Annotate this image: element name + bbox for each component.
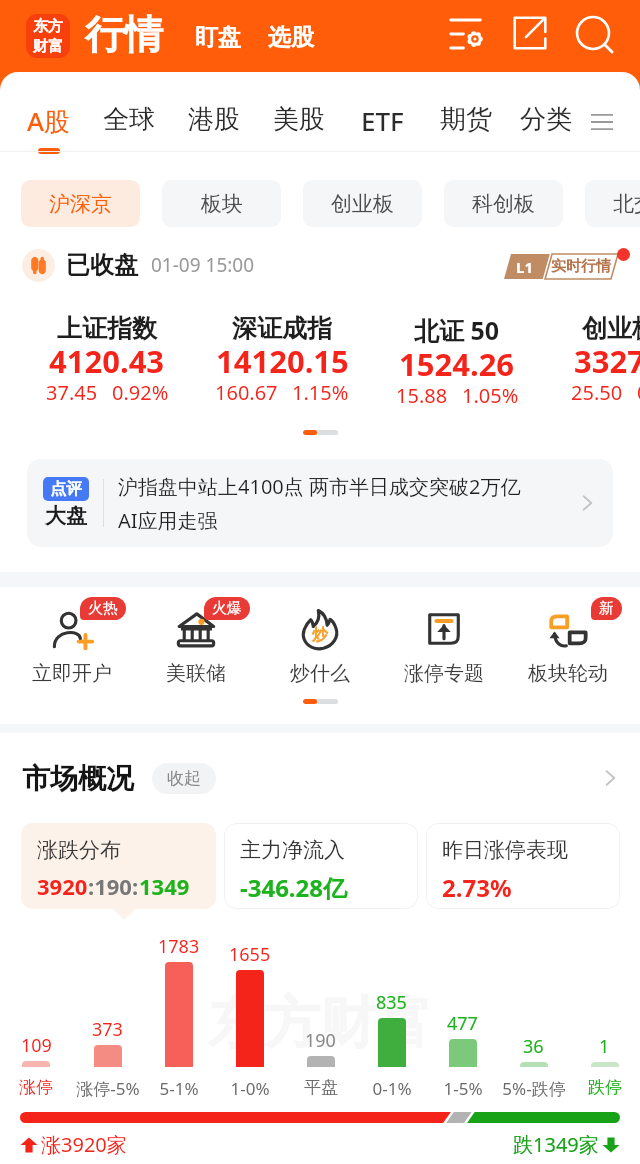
staticText: 0.77% <box>637 379 640 406</box>
button[interactable]: 港股 <box>174 72 254 152</box>
staticText: 实时行情 <box>551 257 611 276</box>
staticText: L1 <box>516 257 533 277</box>
button[interactable]: 收起 <box>152 763 216 794</box>
button[interactable]: Settings <box>449 16 485 52</box>
button[interactable]: 涨停专题 <box>382 601 506 691</box>
staticText: 行情 <box>85 10 163 59</box>
staticText: 1349 <box>139 871 190 901</box>
staticText: A股 <box>27 103 71 139</box>
button[interactable]: East Money <box>26 14 70 58</box>
button[interactable]: 行情 <box>85 10 163 59</box>
staticText: 01-09 15:00 <box>151 252 255 278</box>
button[interactable]: 涨跌分布 <box>21 823 216 909</box>
button[interactable]: 科创板 <box>444 180 563 227</box>
staticText: 2.73% <box>442 871 512 904</box>
staticText: 收起 <box>167 768 201 789</box>
staticText: 跌停 <box>588 1077 622 1098</box>
staticText: 板块轮动 <box>528 661 608 686</box>
staticText: 涨停 <box>19 1077 53 1098</box>
staticText: :190: <box>88 871 139 901</box>
staticText: 选股 <box>268 23 314 52</box>
staticText: 东方 <box>33 17 63 36</box>
staticText: 财富 <box>33 37 63 56</box>
button[interactable]: Share <box>513 16 547 50</box>
staticText: 盯盘 <box>195 23 241 52</box>
staticText: 炒什么 <box>290 661 350 686</box>
button[interactable]: 昨日涨停表现 <box>426 823 620 909</box>
staticText: 沪深京 <box>49 191 112 217</box>
button[interactable]: 深证成指 <box>182 309 382 413</box>
button[interactable]: ETF <box>342 72 422 152</box>
staticText: 科创板 <box>472 191 535 217</box>
staticText: 火爆 <box>212 599 242 618</box>
button[interactable]: Search <box>573 13 615 55</box>
staticText: 1783 <box>158 934 200 959</box>
staticText: 5%-跌停 <box>502 1077 566 1100</box>
staticText: 北交所 <box>613 191 640 217</box>
staticText: 涨3920家 <box>41 1131 127 1158</box>
staticText: 分类 <box>520 103 572 136</box>
staticText: 点评 <box>50 479 82 499</box>
staticText: 14120.15 <box>216 340 349 382</box>
staticText: 1 <box>599 1034 610 1059</box>
button[interactable]: 新 <box>506 601 630 691</box>
staticText: 477 <box>447 1011 478 1036</box>
button[interactable]: 上证指数 <box>7 309 207 413</box>
button[interactable]: 选股 <box>264 20 318 55</box>
button[interactable]: A股 <box>9 72 89 152</box>
staticText: 市场概况 <box>22 761 134 796</box>
staticText: 已收盘 <box>66 250 138 280</box>
staticText: 火热 <box>88 599 118 618</box>
staticText: 全球 <box>103 103 155 136</box>
staticText: 美股 <box>273 103 325 136</box>
staticText: 5-1% <box>159 1077 199 1100</box>
staticText: 109 <box>21 1033 52 1058</box>
staticText: 炒 <box>312 625 328 645</box>
button[interactable]: 分类 <box>506 72 586 152</box>
staticText: 1-0% <box>230 1077 270 1100</box>
staticText: 板块 <box>201 191 243 217</box>
staticText: 创业板 <box>331 191 394 217</box>
staticText: 1.15% <box>292 379 349 406</box>
staticText: 3920 <box>37 871 88 901</box>
staticText: 期货 <box>440 103 492 136</box>
staticText: 0-1% <box>372 1077 412 1100</box>
button[interactable]: 创业板 <box>303 180 422 227</box>
button[interactable]: 期货 <box>426 72 506 152</box>
button[interactable]: 全球 <box>89 72 169 152</box>
button[interactable]: L1 <box>504 254 618 279</box>
staticText: 4120.43 <box>49 340 165 382</box>
staticText: 港股 <box>188 103 240 136</box>
button[interactable]: 市场概况 <box>22 733 622 823</box>
staticText: 1-5% <box>443 1077 483 1100</box>
button[interactable]: 创业板指 <box>532 309 640 413</box>
staticText: 深证成指 <box>232 313 332 344</box>
staticText: 835 <box>376 990 407 1015</box>
staticText: AI应用走强 <box>118 507 218 534</box>
button[interactable]: 美股 <box>259 72 339 152</box>
staticText: 25.50 <box>571 379 623 406</box>
button[interactable]: 北交所 <box>585 180 640 227</box>
button[interactable]: More categories <box>580 72 624 136</box>
staticText: 北证 50 <box>414 313 500 347</box>
button[interactable]: 板块 <box>162 180 281 227</box>
button[interactable]: 火爆 <box>134 601 258 691</box>
button[interactable]: 沪深京 <box>21 180 140 227</box>
staticText: -346.28亿 <box>240 871 348 904</box>
staticText: 37.45 <box>46 379 98 406</box>
staticText: 1655 <box>229 942 271 967</box>
button[interactable]: 炒 <box>258 601 382 691</box>
button[interactable]: 火热 <box>10 601 134 691</box>
staticText: 涨停-5% <box>76 1077 140 1100</box>
staticText: 3327.86 <box>574 340 640 382</box>
button[interactable]: 北证 50 <box>357 309 557 416</box>
staticText: 涨跌分布 <box>37 837 121 863</box>
staticText: 1.05% <box>462 382 519 409</box>
staticText: 15.88 <box>396 382 448 409</box>
button[interactable]: 点评 <box>27 459 613 547</box>
staticText: 新 <box>599 599 614 618</box>
button[interactable]: 主力净流入 <box>224 823 418 909</box>
staticText: 36 <box>523 1034 544 1059</box>
button[interactable]: 盯盘 <box>191 20 245 55</box>
staticText: 上证指数 <box>57 313 157 344</box>
